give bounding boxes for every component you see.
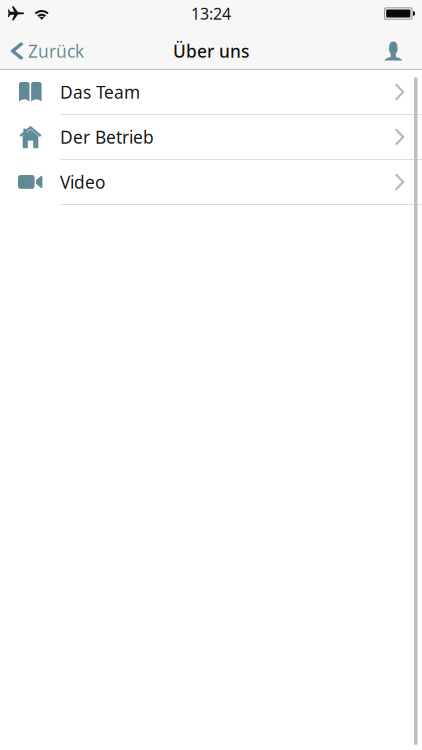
staticText: Über uns [173,39,249,62]
button[interactable]: Account [384,29,422,72]
button[interactable]: Der Betrieb [0,115,422,160]
button[interactable]: Video [0,160,422,205]
staticText: Video [60,170,105,193]
staticText: Zurück [28,39,84,62]
staticText: Der Betrieb [60,125,154,148]
staticText: Das Team [60,80,140,103]
staticText: 13:24 [191,3,231,24]
button[interactable]: Zurück [0,29,92,72]
button[interactable]: Das Team [0,70,422,115]
